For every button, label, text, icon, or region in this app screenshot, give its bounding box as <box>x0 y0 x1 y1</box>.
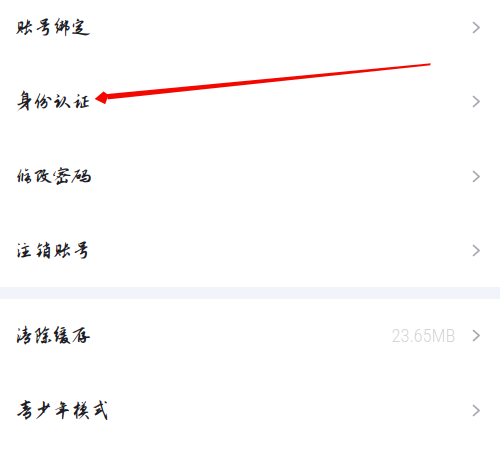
button[interactable]: 注销账号 <box>0 214 500 287</box>
staticText: 修改密码 <box>14 166 90 187</box>
staticText: 注销账号 <box>14 240 90 261</box>
staticText: 23.65MB <box>391 325 455 346</box>
staticText: 账号绑定 <box>14 17 90 38</box>
button[interactable]: 修改密码 <box>0 139 500 214</box>
staticText: 青少年模式 <box>14 400 109 421</box>
button[interactable]: 账号绑定 <box>0 0 500 64</box>
button[interactable]: 身份认证 <box>0 64 500 139</box>
button[interactable]: 青少年模式 <box>0 372 500 449</box>
staticText: 身份认证 <box>14 91 90 112</box>
staticText: 清除缓存 <box>14 325 90 346</box>
button[interactable]: 清除缓存 <box>0 299 500 372</box>
